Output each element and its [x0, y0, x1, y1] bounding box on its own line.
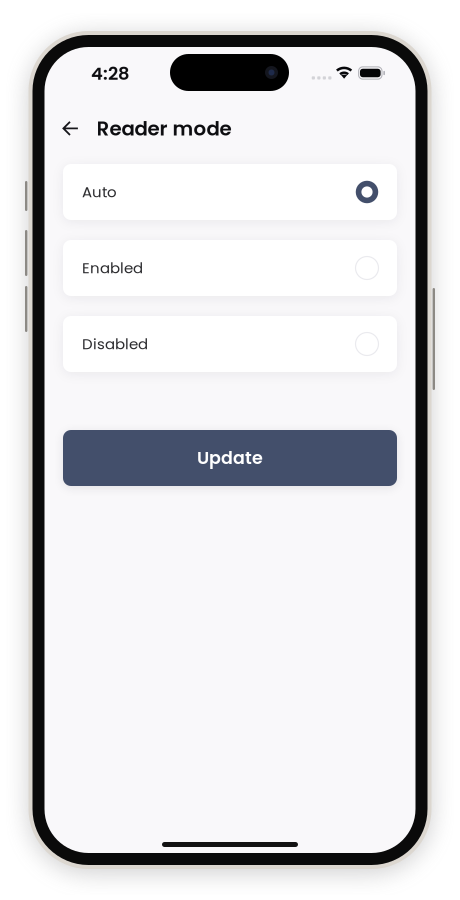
staticText: Auto [82, 181, 117, 202]
staticText: 4:28 [91, 61, 129, 86]
button[interactable]: Enabled [63, 240, 397, 296]
button[interactable]: Disabled [63, 316, 397, 372]
button[interactable]: Update [63, 430, 397, 486]
button[interactable]: Auto [63, 164, 397, 220]
button[interactable]: Back [53, 111, 87, 145]
staticText: Reader mode [96, 115, 231, 142]
staticText: Disabled [82, 333, 148, 354]
staticText: Enabled [82, 257, 143, 278]
staticText: Update [197, 446, 263, 470]
